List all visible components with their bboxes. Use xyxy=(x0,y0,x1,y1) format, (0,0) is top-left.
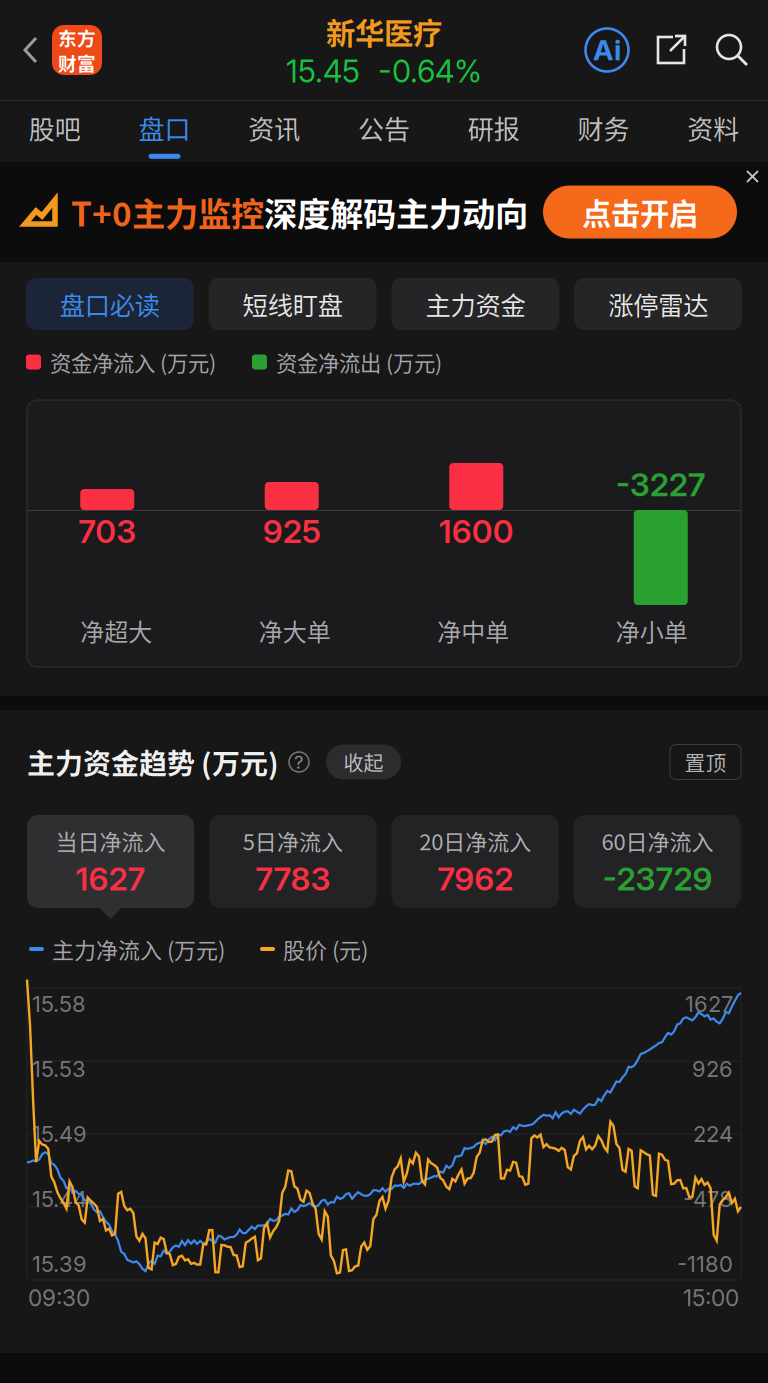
staticText: 703 xyxy=(78,512,136,551)
staticText: 1627 xyxy=(685,991,733,1017)
staticText: 925 xyxy=(263,512,321,551)
button[interactable]: 说明 xyxy=(279,751,310,773)
staticText: 15.45 xyxy=(286,53,360,90)
staticText: 短线盯盘 xyxy=(243,286,343,322)
staticText: -0.64% xyxy=(378,53,482,90)
button[interactable]: 盘口必读 xyxy=(26,278,194,330)
staticText: 盘口必读 xyxy=(60,286,160,322)
staticText: 资料 xyxy=(687,109,739,147)
staticText: 主力资金趋势 (万元) xyxy=(27,742,279,782)
staticText: ? xyxy=(294,751,304,773)
button[interactable]: 股吧 xyxy=(0,97,110,166)
staticText: 财富 xyxy=(58,49,96,76)
staticText: -478 xyxy=(683,1186,733,1212)
staticText: 净小单 xyxy=(616,613,688,648)
button[interactable]: AI 助手 xyxy=(584,27,630,73)
button[interactable]: 公告 xyxy=(329,97,439,166)
staticText: 净大单 xyxy=(259,613,331,648)
button[interactable]: 研报 xyxy=(439,97,549,166)
button[interactable]: 搜索 xyxy=(690,32,768,68)
staticText: 财务 xyxy=(577,109,629,147)
staticText: 当日净流入 xyxy=(56,825,166,857)
staticText: -3227 xyxy=(616,465,706,504)
staticText: 净中单 xyxy=(437,613,509,648)
staticText: -1180 xyxy=(677,1251,733,1277)
staticText: 资金净流入 (万元) xyxy=(50,347,216,377)
button[interactable]: 返回 xyxy=(0,34,52,66)
staticText: 926 xyxy=(692,1056,733,1082)
staticText: 224 xyxy=(693,1121,733,1147)
staticText: 7962 xyxy=(437,860,513,898)
button[interactable]: 收起 xyxy=(310,744,401,779)
staticText: 主力净流入 (万元) xyxy=(52,933,225,965)
button[interactable]: 20日净流入 xyxy=(391,815,559,908)
button[interactable]: 60日净流入 xyxy=(574,815,741,908)
button[interactable]: 主力资金 xyxy=(391,278,559,330)
button[interactable]: 财务 xyxy=(549,97,658,166)
button[interactable]: 资讯 xyxy=(219,97,329,166)
button[interactable]: 东方财富 xyxy=(52,25,102,75)
staticText: 收起 xyxy=(343,747,383,776)
staticText: 股价 (元) xyxy=(283,933,368,965)
staticText: 深度解码主力动向 xyxy=(264,188,528,236)
staticText: 涨停雷达 xyxy=(608,286,708,322)
button[interactable]: 当日净流入 xyxy=(27,815,194,908)
staticText: 主力资金 xyxy=(425,286,525,322)
button[interactable]: 分享 xyxy=(630,32,690,68)
staticText: 新华医疗 xyxy=(326,10,442,53)
staticText: 15.58 xyxy=(32,991,86,1017)
staticText: 60日净流入 xyxy=(601,825,713,857)
staticText: 点击开启 xyxy=(582,191,698,233)
button[interactable]: 点击开启 xyxy=(543,185,737,238)
staticText: 15:00 xyxy=(683,1284,739,1312)
staticText: 5日净流入 xyxy=(243,825,343,857)
staticText: 置顶 xyxy=(684,747,726,777)
staticText: 15.53 xyxy=(32,1056,86,1082)
staticText: 15.49 xyxy=(32,1121,87,1147)
button[interactable]: 5日净流入 xyxy=(209,815,376,908)
staticText: 净超大 xyxy=(80,613,152,648)
staticText: 东方 xyxy=(58,24,96,51)
staticText: 1627 xyxy=(76,860,146,898)
staticText: 公告 xyxy=(358,109,410,147)
button[interactable]: 关闭 xyxy=(734,162,768,195)
staticText: 15.44 xyxy=(32,1186,87,1212)
button[interactable]: 盘口 xyxy=(110,97,219,166)
button[interactable]: 置顶 xyxy=(670,744,741,779)
button[interactable]: 资料 xyxy=(658,97,768,166)
staticText: 20日净流入 xyxy=(419,825,531,857)
staticText: 7783 xyxy=(255,860,330,898)
staticText: 研报 xyxy=(468,109,520,147)
staticText: 09:30 xyxy=(28,1284,90,1312)
staticText: -23729 xyxy=(602,860,712,898)
staticText: 股吧 xyxy=(29,109,81,147)
staticText: 资金净流出 (万元) xyxy=(276,347,442,377)
staticText: Ai xyxy=(593,33,621,67)
staticText: 1600 xyxy=(439,512,514,551)
button[interactable]: 短线盯盘 xyxy=(209,278,376,330)
button[interactable]: 涨停雷达 xyxy=(574,278,742,330)
staticText: 盘口 xyxy=(139,109,191,147)
staticText: T+0主力监控 xyxy=(71,188,264,236)
staticText: 资讯 xyxy=(248,109,300,147)
staticText: 15.39 xyxy=(32,1251,87,1277)
